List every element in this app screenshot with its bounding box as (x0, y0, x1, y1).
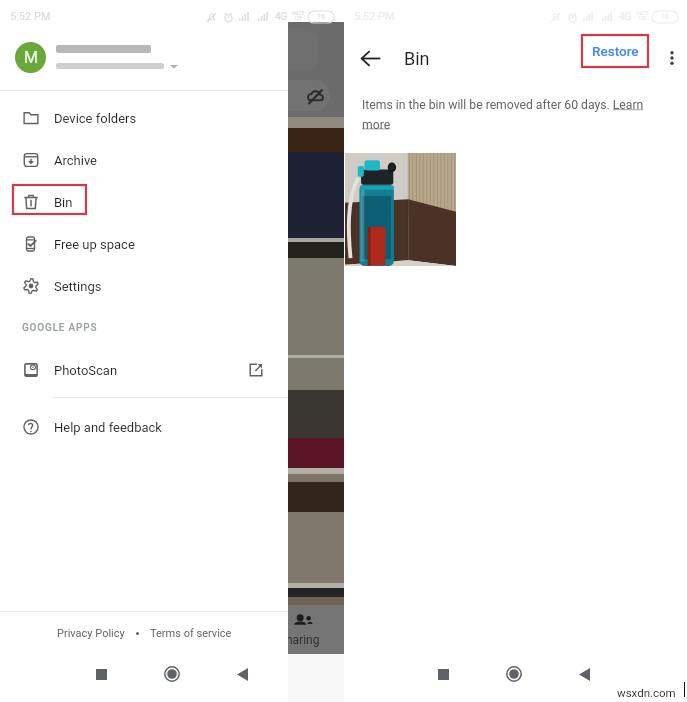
button[interactable]: Terms of service (146, 619, 236, 648)
button[interactable]: Device folders (0, 97, 288, 139)
button[interactable]: Privacy Policy (53, 619, 129, 648)
staticText: wsxdn.com (617, 686, 676, 699)
button[interactable]: Bin (0, 181, 288, 223)
staticText: Device folders (54, 111, 137, 126)
button[interactable]: Recents (423, 654, 463, 694)
staticText: 4G (275, 11, 288, 23)
staticText: VoLTE (292, 11, 305, 16)
button[interactable]: PhotoScan (0, 349, 288, 391)
button[interactable]: Photo of water bottle (345, 153, 456, 266)
staticText: 5:52 PM (354, 10, 395, 23)
staticText: 76 (317, 13, 325, 21)
staticText: Archive (54, 153, 97, 168)
button[interactable]: M (0, 25, 288, 90)
button[interactable]: Help and feedback (0, 406, 288, 448)
button[interactable]: More options (654, 40, 687, 76)
button[interactable]: Settings (0, 265, 288, 307)
staticText: Privacy Policy (57, 627, 125, 640)
staticText: 4G (619, 11, 632, 23)
button[interactable]: haring (288, 605, 344, 654)
staticText: Settings (54, 279, 102, 294)
button[interactable]: Home (152, 654, 192, 694)
button[interactable]: Back (564, 654, 604, 694)
staticText: Items in the bin will be removed after 6… (362, 98, 654, 131)
staticText: 5:52 PM (10, 10, 51, 23)
staticText: Restore (592, 43, 639, 59)
staticText: GOOGLE APPS (22, 322, 98, 334)
button[interactable]: Restore (582, 35, 648, 67)
button[interactable]: Search your photos (262, 28, 318, 70)
staticText: Free up space (54, 237, 135, 252)
staticText: VoLTE (636, 11, 649, 16)
button[interactable]: Back (222, 654, 262, 694)
staticText: Help and feedback (54, 420, 162, 435)
staticText: 76 (661, 13, 669, 21)
staticText: M (24, 48, 38, 67)
button[interactable]: Recents (81, 654, 121, 694)
staticText: haring (286, 633, 320, 647)
button[interactable]: Home (494, 654, 534, 694)
button[interactable]: Free up space (0, 223, 288, 265)
staticText: Bin (404, 48, 430, 69)
button[interactable]: Items in the bin will be removed after 6… (362, 98, 654, 131)
staticText: PhotoScan (54, 363, 118, 378)
staticText: LTE (295, 16, 303, 21)
staticText: Bin (54, 195, 73, 210)
button[interactable]: Archive (0, 139, 288, 181)
staticText: LTE (639, 16, 647, 21)
staticText: Terms of service (150, 627, 232, 640)
button[interactable]: Back up off (274, 80, 330, 111)
button[interactable]: Back (352, 40, 388, 76)
